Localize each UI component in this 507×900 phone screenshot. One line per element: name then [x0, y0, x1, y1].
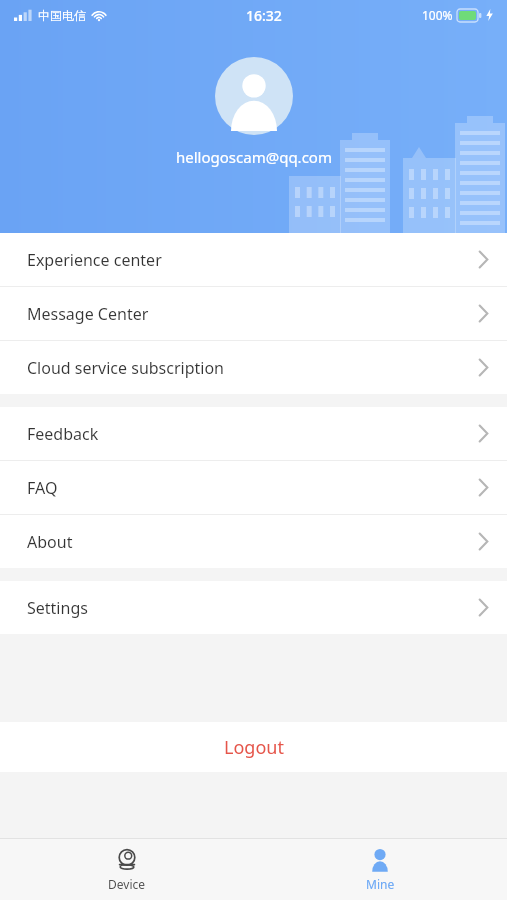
- staticText: Mine: [366, 876, 395, 892]
- staticText: Settings: [27, 597, 88, 619]
- staticText: Experience center: [27, 249, 162, 271]
- staticText: Device: [108, 876, 146, 892]
- button[interactable]: Device: [0, 839, 253, 900]
- staticText: Message Center: [27, 303, 149, 325]
- button[interactable]: Logout: [0, 722, 507, 772]
- button[interactable]: Mine: [253, 839, 507, 900]
- staticText: 16:32: [246, 6, 282, 25]
- staticText: 100%: [422, 7, 453, 23]
- staticText: Cloud service subscription: [27, 357, 225, 379]
- staticText: Logout: [224, 735, 284, 760]
- button[interactable]: FAQ: [0, 461, 507, 514]
- staticText: Feedback: [27, 423, 99, 445]
- staticText: 中国电信: [38, 8, 86, 23]
- staticText: About: [27, 531, 73, 553]
- button[interactable]: Experience center: [0, 233, 507, 286]
- button[interactable]: Cloud service subscription: [0, 341, 507, 394]
- button[interactable]: Message Center: [0, 287, 507, 340]
- button[interactable]: Feedback: [0, 407, 507, 460]
- staticText: FAQ: [27, 477, 58, 499]
- button[interactable]: Settings: [0, 581, 507, 634]
- button[interactable]: About: [0, 515, 507, 568]
- staticText: hellogoscam@qq.com: [176, 147, 332, 167]
